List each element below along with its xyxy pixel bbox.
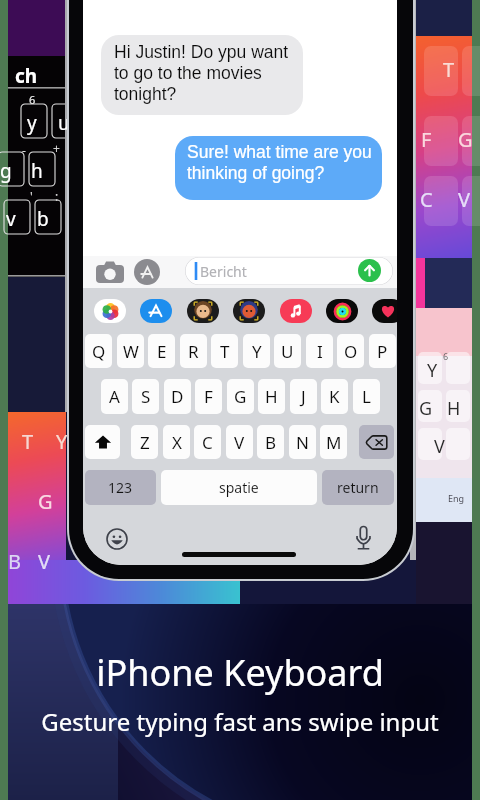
button[interactable]: Send [358, 259, 381, 282]
staticText: W [123, 340, 139, 363]
staticText: H [265, 385, 278, 408]
staticText: 123 [108, 478, 133, 497]
button[interactable]: P [369, 334, 396, 368]
staticText: ch [15, 63, 38, 89]
button[interactable]: B [257, 425, 284, 459]
button[interactable]: W [117, 334, 144, 368]
button[interactable]: N [289, 425, 316, 459]
staticText: P [377, 340, 388, 363]
staticText: spatie [219, 478, 259, 497]
staticText: G [458, 126, 473, 153]
staticText: G [38, 488, 53, 515]
button[interactable]: H [258, 379, 285, 414]
button[interactable]: Z [131, 425, 158, 459]
staticText: N [296, 431, 309, 454]
button[interactable]: G [227, 379, 254, 414]
button[interactable]: Camera [96, 261, 124, 283]
button[interactable]: I [306, 334, 333, 368]
button[interactable]: Sure! what time are you thinking of goin… [175, 136, 382, 200]
staticText: Gesture typing fast ans swipe input [41, 705, 439, 738]
staticText: M [326, 431, 342, 454]
button[interactable]: T [211, 334, 238, 368]
button[interactable]: Q [85, 334, 112, 368]
button[interactable]: J [290, 379, 317, 414]
button[interactable]: A [101, 379, 128, 414]
staticText: v [6, 206, 16, 232]
staticText: V [38, 548, 50, 575]
staticText: F [204, 385, 213, 408]
button[interactable]: Shift [85, 425, 120, 459]
staticText: H [447, 396, 461, 421]
staticText: u [58, 110, 70, 136]
staticText: E [157, 340, 167, 363]
button[interactable]: Hi Justin! Do ypu want to go to the movi… [101, 35, 303, 115]
button[interactable]: U [274, 334, 301, 368]
staticText: V [234, 431, 245, 454]
button[interactable]: Microphone [354, 525, 372, 551]
staticText: U [281, 340, 294, 363]
staticText: : [55, 188, 59, 204]
button[interactable]: O [337, 334, 364, 368]
button[interactable]: C [194, 425, 221, 459]
staticText: B [8, 548, 21, 575]
button[interactable]: Bericht [185, 257, 393, 285]
staticText: Y [252, 340, 262, 363]
staticText: T [22, 428, 34, 455]
staticText: Z [140, 431, 150, 454]
button[interactable]: L [353, 379, 380, 414]
staticText: J [301, 385, 306, 408]
button[interactable]: App [326, 299, 358, 323]
button[interactable]: K [321, 379, 348, 414]
staticText: g [0, 158, 12, 184]
staticText: S [141, 385, 151, 408]
staticText: T [220, 340, 230, 363]
staticText: B [265, 431, 277, 454]
button[interactable]: V [226, 425, 253, 459]
staticText: - [22, 142, 26, 158]
button[interactable]: App [372, 299, 397, 323]
staticText: F [421, 126, 432, 153]
button[interactable]: return [322, 470, 394, 505]
button[interactable]: S [132, 379, 159, 414]
button[interactable]: D [164, 379, 191, 414]
button[interactable]: Emoji [106, 528, 128, 550]
button[interactable]: M [320, 425, 347, 459]
staticText: + [53, 140, 60, 156]
button[interactable]: App [233, 299, 265, 323]
staticText: C [420, 186, 433, 213]
staticText: Bericht [200, 262, 247, 281]
staticText: b [37, 206, 49, 232]
button[interactable]: App [140, 299, 172, 323]
button[interactable]: App [187, 299, 219, 323]
staticText: y [27, 110, 37, 136]
staticText: C [202, 431, 213, 454]
button[interactable]: F [195, 379, 222, 414]
staticText: Eng [448, 492, 465, 504]
button[interactable]: X [163, 425, 190, 459]
staticText: G [419, 396, 433, 421]
staticText: O [344, 340, 358, 363]
staticText: V [458, 186, 470, 213]
button[interactable]: App Store [134, 259, 160, 285]
button[interactable]: 123 [85, 470, 156, 505]
button[interactable]: App [280, 299, 312, 323]
button[interactable]: E [148, 334, 175, 368]
staticText: return [337, 478, 379, 497]
staticText: D [171, 385, 184, 408]
staticText: L [362, 385, 371, 408]
staticText: Sure! what time are you thinking of goin… [187, 142, 379, 183]
staticText: 6 [443, 350, 449, 362]
staticText: 6 [29, 92, 36, 107]
button[interactable]: Backspace [359, 425, 394, 459]
staticText: V [434, 434, 445, 459]
staticText: iPhone Keyboard [96, 648, 384, 697]
staticText: A [109, 385, 120, 408]
button[interactable]: spatie [161, 470, 317, 505]
staticText: Q [92, 340, 106, 363]
button[interactable]: App [94, 299, 126, 323]
button[interactable]: R [180, 334, 207, 368]
staticText: ' [30, 188, 33, 204]
staticText: X [172, 431, 182, 454]
staticText: h [31, 158, 43, 184]
button[interactable]: Y [243, 334, 270, 368]
